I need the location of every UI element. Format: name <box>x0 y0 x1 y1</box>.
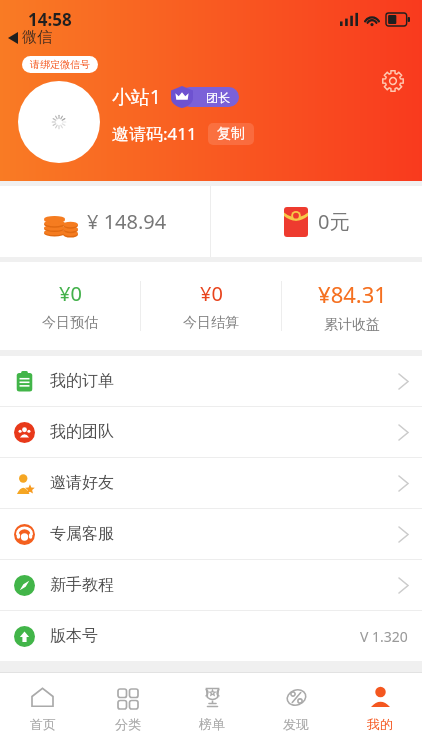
staticText: 分类 <box>115 716 141 732</box>
staticText: 专属客服 <box>50 524 114 544</box>
button[interactable]: 新手教程 <box>0 560 422 610</box>
button[interactable]: ¥0 <box>141 262 281 350</box>
staticText: 我的团队 <box>50 422 114 442</box>
staticText: ¥0 <box>59 280 82 307</box>
staticText: 小站1 <box>112 84 161 110</box>
button[interactable]: 我的订单 <box>0 356 422 406</box>
button[interactable]: 我的 <box>338 673 422 750</box>
staticText: 今日结算 <box>183 314 239 332</box>
staticText: 0元 <box>318 208 350 235</box>
staticText: 复制 <box>217 125 245 143</box>
button[interactable]: 发现 <box>254 673 338 750</box>
button[interactable]: 0元 <box>211 186 422 257</box>
staticText: ¥0 <box>200 280 223 307</box>
button[interactable]: 复制 <box>208 123 254 145</box>
button[interactable]: 专属客服 <box>0 509 422 559</box>
staticText: 我的 <box>367 716 393 732</box>
button[interactable]: 榜单 <box>170 673 254 750</box>
staticText: ¥ 148.94 <box>87 208 167 235</box>
staticText: 我的订单 <box>50 371 114 391</box>
button[interactable]: 首页 <box>0 673 85 750</box>
staticText: 新手教程 <box>50 575 114 595</box>
staticText: 版本号 <box>50 626 98 646</box>
staticText: 请绑定微信号 <box>30 58 90 71</box>
staticText: 14:58 <box>28 8 72 31</box>
button[interactable]: Settings <box>378 66 408 96</box>
staticText: 今日预估 <box>42 314 98 332</box>
button[interactable]: 邀请好友 <box>0 458 422 508</box>
staticText: 团长 <box>206 90 230 105</box>
button[interactable]: ¥0 <box>0 262 140 350</box>
staticText: 邀请好友 <box>50 473 114 493</box>
staticText: V 1.320 <box>360 627 408 646</box>
staticText: 累计收益 <box>324 316 380 334</box>
staticText: 微信 <box>22 28 52 47</box>
button[interactable]: 分类 <box>85 673 170 750</box>
staticText: ¥84.31 <box>318 279 387 309</box>
staticText: 发现 <box>283 716 309 732</box>
staticText: 邀请码:411 <box>112 122 197 145</box>
button[interactable]: ¥84.31 <box>282 262 422 350</box>
button[interactable]: 版本号 <box>0 611 422 661</box>
button[interactable] <box>18 81 100 163</box>
button[interactable]: 我的团队 <box>0 407 422 457</box>
staticText: 榜单 <box>199 716 225 732</box>
staticText: 首页 <box>30 716 56 732</box>
button[interactable]: 微信 <box>8 28 52 47</box>
button[interactable]: 请绑定微信号 <box>22 56 98 73</box>
button[interactable]: ¥ 148.94 <box>0 186 210 257</box>
